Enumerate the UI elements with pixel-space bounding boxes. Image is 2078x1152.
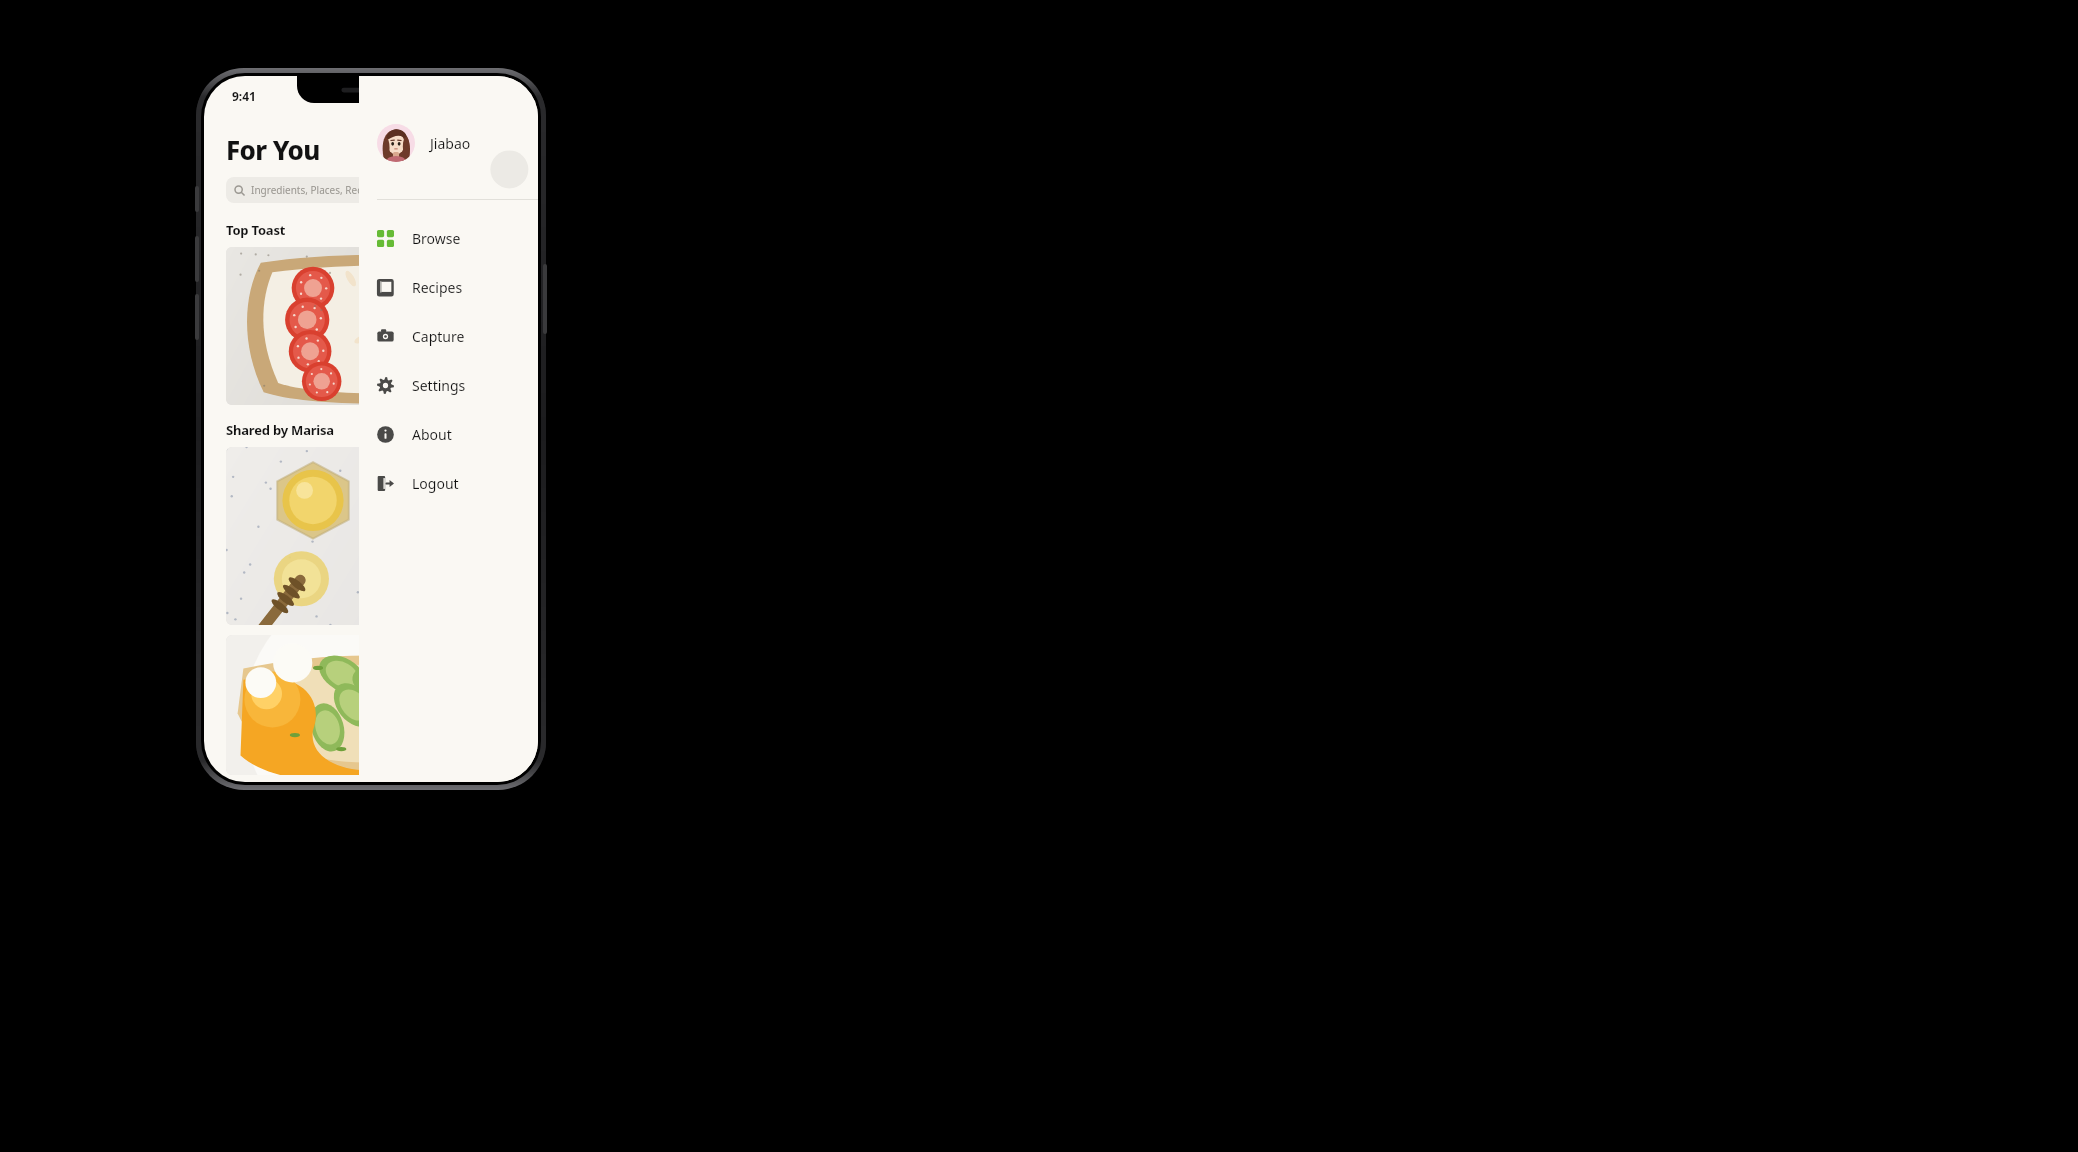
button[interactable] <box>226 635 516 775</box>
button[interactable]: Logout <box>359 459 538 508</box>
staticText: Ingredients, Places, Recipes <box>251 183 382 197</box>
staticText: About <box>412 425 452 444</box>
button[interactable] <box>226 447 516 625</box>
staticText: Recipes <box>412 278 463 297</box>
staticText: Browse <box>412 229 461 248</box>
button[interactable]: Recipes <box>359 263 538 312</box>
staticText: For You <box>226 132 320 167</box>
staticText: Jiabao <box>430 134 471 153</box>
button[interactable]: Ingredients, Places, Recipes <box>226 177 516 203</box>
button[interactable]: Capture <box>359 312 538 361</box>
staticText: Settings <box>412 376 466 395</box>
button[interactable]: About <box>359 410 538 459</box>
staticText: Top Toast <box>226 221 286 239</box>
staticText: Shared by Marisa <box>226 421 334 439</box>
staticText: Capture <box>412 327 465 346</box>
button[interactable]: Browse <box>359 214 538 263</box>
staticText: 9:41 <box>232 88 256 104</box>
button[interactable]: Jiabao <box>359 120 538 166</box>
staticText: Logout <box>412 474 459 493</box>
button[interactable] <box>226 247 516 405</box>
button[interactable]: Settings <box>359 361 538 410</box>
